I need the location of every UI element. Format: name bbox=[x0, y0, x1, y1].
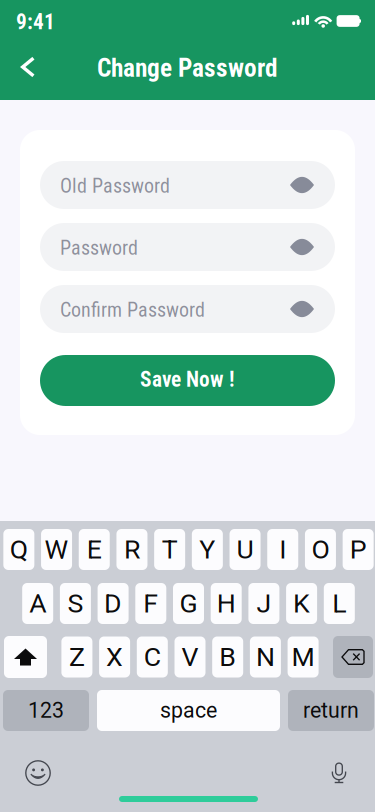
button[interactable]: X bbox=[99, 636, 130, 677]
staticText: D bbox=[104, 588, 122, 619]
button[interactable]: M bbox=[288, 636, 319, 677]
staticText: O bbox=[311, 534, 329, 565]
staticText: I bbox=[279, 534, 286, 565]
staticText: T bbox=[162, 534, 178, 565]
staticText: return bbox=[303, 698, 359, 723]
button[interactable]: E bbox=[79, 529, 110, 570]
staticText: 9:41 bbox=[16, 9, 55, 34]
staticText: J bbox=[256, 588, 271, 619]
button[interactable]: O bbox=[305, 529, 336, 570]
button[interactable]: Y bbox=[192, 529, 223, 570]
staticText: P bbox=[350, 534, 367, 565]
button[interactable]: Show Confirm Password bbox=[281, 286, 323, 332]
button[interactable]: F bbox=[135, 583, 166, 624]
button[interactable]: B bbox=[212, 636, 243, 677]
button[interactable]: J bbox=[248, 583, 279, 624]
button[interactable]: Emoji keyboard bbox=[14, 751, 62, 795]
staticText: Change Password bbox=[97, 53, 278, 83]
button[interactable]: return bbox=[288, 690, 374, 731]
button[interactable]: Show Password bbox=[281, 224, 323, 270]
staticText: W bbox=[44, 534, 68, 565]
button[interactable]: K bbox=[286, 583, 317, 624]
staticText: R bbox=[124, 534, 140, 565]
staticText: Old Password bbox=[60, 174, 170, 198]
button[interactable]: H bbox=[211, 583, 242, 624]
button[interactable]: U bbox=[229, 529, 260, 570]
button[interactable]: V bbox=[174, 636, 205, 677]
button[interactable]: R bbox=[116, 529, 147, 570]
button[interactable]: A bbox=[22, 583, 53, 624]
staticText: S bbox=[67, 588, 83, 619]
button[interactable]: space bbox=[97, 690, 280, 731]
button[interactable]: Dictation bbox=[315, 751, 363, 795]
button[interactable]: I bbox=[267, 529, 298, 570]
staticText: U bbox=[236, 534, 253, 565]
button[interactable]: L bbox=[324, 583, 355, 624]
staticText: E bbox=[87, 534, 102, 565]
button[interactable]: 123 bbox=[3, 690, 89, 731]
button[interactable]: Delete bbox=[333, 636, 373, 678]
button[interactable]: Z bbox=[61, 636, 92, 677]
staticText: F bbox=[143, 588, 158, 619]
button[interactable]: Shift bbox=[4, 636, 47, 678]
staticText: space bbox=[160, 698, 217, 723]
staticText: B bbox=[219, 641, 236, 673]
staticText: Y bbox=[199, 534, 215, 565]
staticText: M bbox=[292, 641, 315, 673]
staticText: H bbox=[217, 588, 236, 619]
button[interactable]: C bbox=[137, 636, 168, 677]
staticText: L bbox=[332, 588, 346, 619]
button[interactable]: Back bbox=[6, 45, 50, 89]
staticText: Save Now ! bbox=[140, 367, 235, 392]
button[interactable]: S bbox=[60, 583, 91, 624]
button[interactable]: Show Old Password bbox=[281, 162, 323, 208]
staticText: Z bbox=[69, 641, 85, 673]
staticText: G bbox=[179, 588, 197, 619]
staticText: Password bbox=[60, 236, 138, 260]
button[interactable]: N bbox=[250, 636, 281, 677]
staticText: X bbox=[106, 641, 123, 673]
button[interactable]: W bbox=[41, 529, 72, 570]
staticText: N bbox=[256, 641, 275, 673]
staticText: Q bbox=[10, 534, 28, 565]
staticText: 123 bbox=[28, 698, 64, 723]
staticText: K bbox=[293, 588, 310, 619]
button[interactable]: T bbox=[154, 529, 185, 570]
button[interactable]: G bbox=[173, 583, 204, 624]
staticText: V bbox=[181, 641, 198, 673]
staticText: C bbox=[144, 641, 161, 673]
button[interactable]: Save Now ! bbox=[40, 355, 335, 406]
button[interactable]: D bbox=[98, 583, 129, 624]
staticText: A bbox=[29, 588, 46, 619]
button[interactable]: Q bbox=[3, 529, 34, 570]
button[interactable]: P bbox=[343, 529, 374, 570]
staticText: Confirm Password bbox=[60, 298, 205, 322]
